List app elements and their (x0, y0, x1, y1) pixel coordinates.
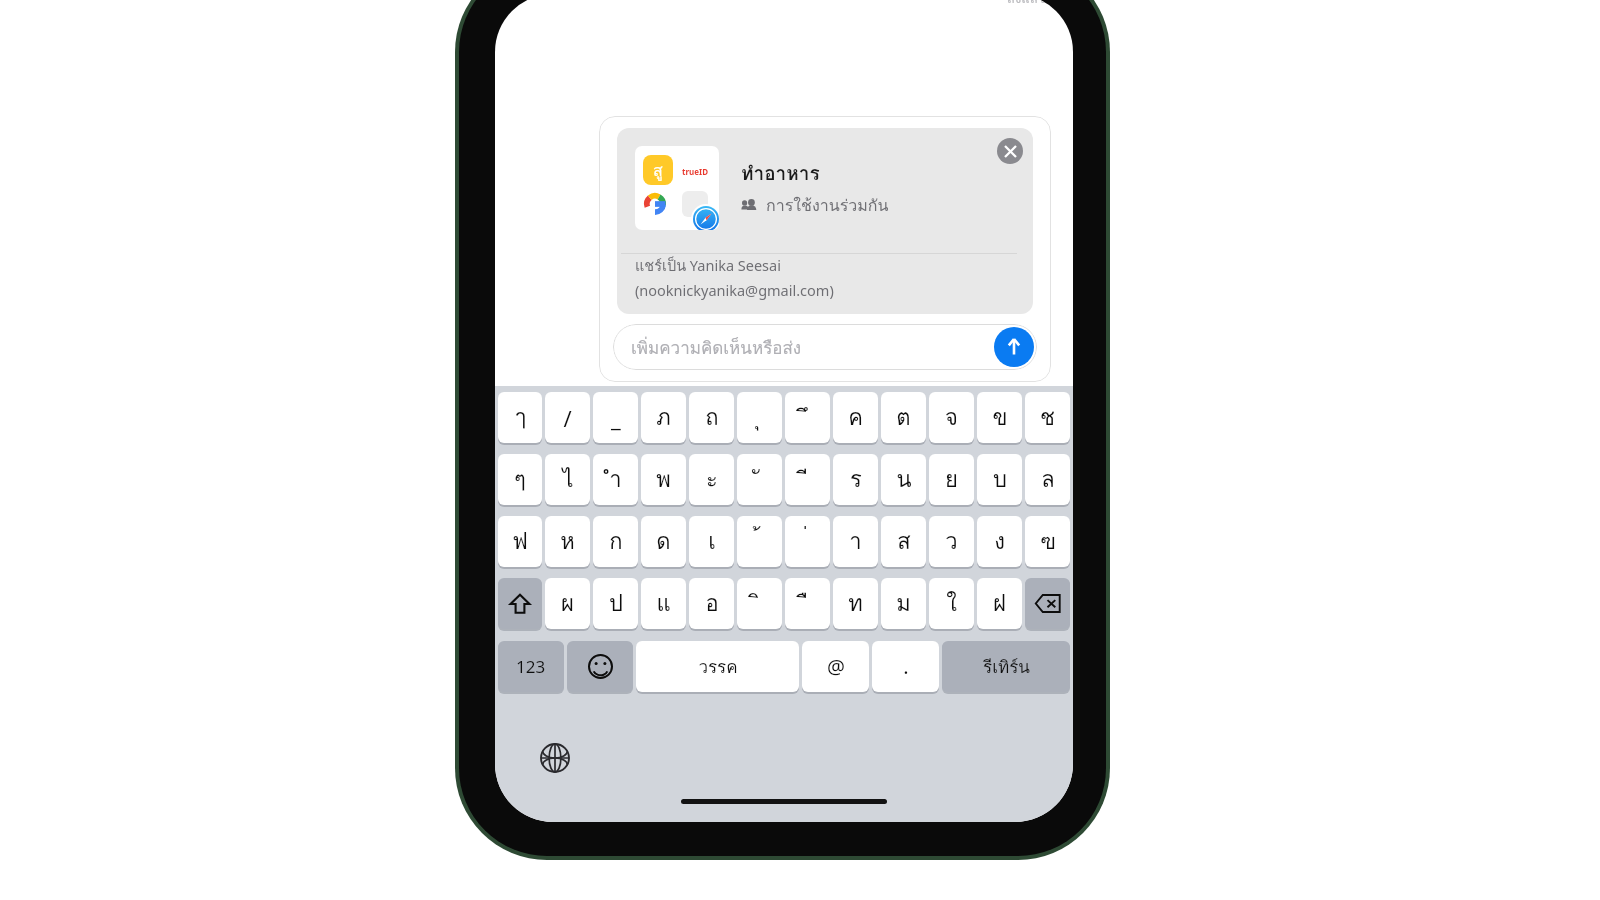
button[interactable]: ื (785, 578, 830, 629)
staticText: ส่งแล้ว (1007, 0, 1045, 9)
button[interactable]: _ (593, 392, 638, 443)
staticText: ไ (562, 462, 574, 497)
button[interactable]: Send (994, 327, 1034, 367)
button[interactable]: สู (617, 128, 1033, 314)
button[interactable]: วรรค (636, 641, 799, 692)
button[interactable]: ม (881, 578, 926, 629)
button[interactable]: Backspace (1025, 578, 1070, 629)
button[interactable]: Emoji (567, 641, 633, 692)
button[interactable]: ้ (737, 516, 782, 567)
button[interactable]: Change keyboard language (535, 738, 575, 778)
button[interactable]: ข (977, 392, 1022, 443)
staticText: ล (1041, 462, 1055, 497)
button[interactable]: Close (997, 138, 1023, 164)
button[interactable]: ะ (689, 454, 734, 505)
staticText: 123 (516, 655, 546, 678)
button[interactable]: า (833, 516, 878, 567)
button[interactable]: ๆ (498, 454, 542, 505)
staticText: า (849, 524, 862, 559)
button[interactable]: รีเทิร์น (942, 641, 1070, 692)
staticText: บ (993, 462, 1007, 497)
staticText: ห (560, 524, 575, 559)
button[interactable]: ง (977, 516, 1022, 567)
button[interactable]: ๅ (498, 392, 542, 443)
staticText: สู (653, 158, 663, 183)
staticText: ทำอาหาร (741, 158, 820, 188)
staticText: ๅ (515, 400, 526, 435)
staticText: ใ (946, 586, 957, 621)
staticText: ผ (561, 586, 574, 621)
button[interactable]: ว (929, 516, 974, 567)
button[interactable]: น (881, 454, 926, 505)
staticText: ต (896, 400, 911, 435)
button[interactable]: ่ (785, 516, 830, 567)
button[interactable]: ภ (641, 392, 686, 443)
staticText: / (563, 403, 572, 433)
button[interactable]: อ (689, 578, 734, 629)
button[interactable]: ด (641, 516, 686, 567)
button[interactable]: แ (641, 578, 686, 629)
button[interactable]: ก (593, 516, 638, 567)
staticText: ะ (706, 462, 718, 497)
button[interactable]: ห (545, 516, 590, 567)
button[interactable]: เพิ่มความคิดเห็นหรือส่ง (613, 324, 1037, 370)
staticText: ฝ (993, 586, 1006, 621)
staticText: (nooknickyanika@gmail.com) (635, 280, 834, 300)
button[interactable]: / (545, 392, 590, 443)
staticText: ก (609, 524, 623, 559)
button[interactable]: พ (641, 454, 686, 505)
staticText: อ (705, 586, 719, 621)
staticText: ย (945, 462, 958, 497)
staticText: ท (848, 586, 863, 621)
button[interactable]: ผ (545, 578, 590, 629)
staticText: เ (708, 524, 716, 559)
button[interactable]: ส (881, 516, 926, 567)
staticText: แ (656, 586, 671, 621)
button[interactable]: ฃ (1025, 516, 1070, 567)
button[interactable]: ช (1025, 392, 1070, 443)
button[interactable]: จ (929, 392, 974, 443)
staticText: ฃ (1040, 524, 1056, 559)
staticText: เพิ่มความคิดเห็นหรือส่ง (631, 334, 802, 361)
button[interactable]: ี (785, 454, 830, 505)
button[interactable]: ิ (737, 578, 782, 629)
button[interactable]: Shift (498, 578, 542, 629)
staticText: ค (848, 400, 863, 435)
staticText: ข (992, 400, 1008, 435)
button[interactable]: ำ (593, 454, 638, 505)
button[interactable]: บ (977, 454, 1022, 505)
button[interactable]: ท (833, 578, 878, 629)
staticText: แชร์เป็น Yanika Seesai (635, 254, 781, 277)
button[interactable]: ฟ (498, 516, 542, 567)
button[interactable]: ถ (689, 392, 734, 443)
staticText: trueID (682, 166, 708, 177)
button[interactable]: . (872, 641, 939, 692)
staticText: ง (994, 524, 1005, 559)
button[interactable]: ล (1025, 454, 1070, 505)
button[interactable]: ต (881, 392, 926, 443)
staticText: ร (850, 462, 862, 497)
staticText: รีเทิร์น (983, 653, 1030, 680)
button[interactable]: เ (689, 516, 734, 567)
button[interactable]: ป (593, 578, 638, 629)
staticText: . (903, 653, 909, 680)
button[interactable]: ร (833, 454, 878, 505)
button[interactable]: ุ (737, 392, 782, 443)
button[interactable]: ึ (785, 392, 830, 443)
staticText: ถ (705, 400, 719, 435)
staticText: การใช้งานร่วมกัน (766, 193, 889, 218)
staticText: ส (897, 524, 911, 559)
button[interactable]: ย (929, 454, 974, 505)
button[interactable]: ั (737, 454, 782, 505)
staticText: ว (945, 524, 958, 559)
button[interactable]: ไ (545, 454, 590, 505)
button[interactable]: ฝ (977, 578, 1022, 629)
button[interactable]: ค (833, 392, 878, 443)
staticText: ๆ (514, 462, 526, 497)
staticText: _ (611, 403, 621, 433)
button[interactable]: ใ (929, 578, 974, 629)
staticText: จ (945, 400, 958, 435)
staticText: ฟ (512, 524, 528, 559)
button[interactable]: 123 (498, 641, 564, 692)
button[interactable]: @ (802, 641, 869, 692)
